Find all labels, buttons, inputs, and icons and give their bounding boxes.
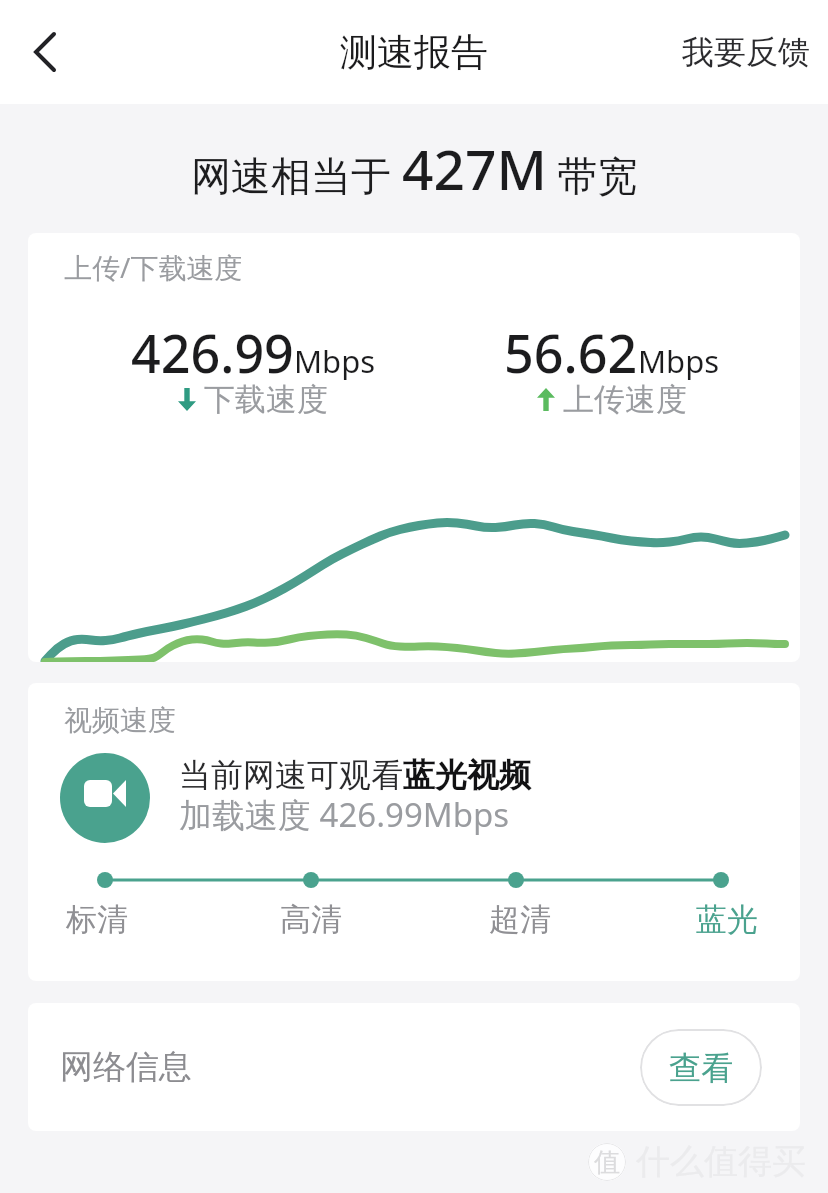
staticText: 网络信息 bbox=[60, 1046, 192, 1088]
staticText: 网速相当于 bbox=[191, 147, 402, 202]
staticText: 下载速度 bbox=[204, 380, 328, 419]
button[interactable]: 高清 bbox=[266, 898, 356, 940]
staticText: 什么值得买 bbox=[636, 1140, 806, 1183]
staticText: 上传/下载速度 bbox=[64, 248, 243, 286]
staticText: 上传速度 bbox=[563, 380, 687, 419]
staticText: 测速报告 bbox=[340, 29, 488, 76]
staticText: 超清 bbox=[489, 900, 551, 939]
staticText: 加载速度 426.99Mbps bbox=[179, 792, 510, 836]
button[interactable]: 查看 bbox=[640, 1029, 762, 1106]
staticText: 查看 bbox=[669, 1048, 733, 1088]
staticText: 带宽 bbox=[547, 147, 638, 202]
staticText: 值 bbox=[594, 1146, 620, 1179]
button[interactable]: 标清 bbox=[52, 898, 142, 940]
staticText: 蓝光 bbox=[696, 900, 758, 939]
button[interactable]: 我要反馈 bbox=[682, 32, 810, 72]
staticText: 视频速度 bbox=[64, 703, 176, 738]
staticText: 高清 bbox=[280, 900, 342, 939]
staticText: 我要反馈 bbox=[682, 32, 810, 72]
staticText: 标清 bbox=[66, 900, 128, 939]
staticText: 当前网速可观看蓝光视频 bbox=[179, 755, 531, 795]
staticText: 426.99 bbox=[131, 317, 294, 388]
staticText: 56.62 bbox=[504, 317, 638, 388]
staticText: Mbps bbox=[294, 340, 376, 382]
staticText: Mbps bbox=[638, 340, 720, 382]
staticText: 427M bbox=[402, 131, 547, 206]
button[interactable]: 蓝光 bbox=[682, 898, 772, 940]
button[interactable]: 超清 bbox=[475, 898, 565, 940]
button[interactable] bbox=[22, 30, 66, 74]
